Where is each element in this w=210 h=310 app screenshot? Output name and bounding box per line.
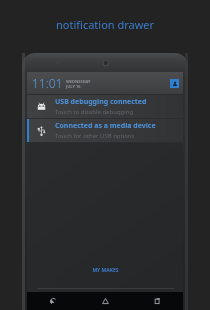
staticText: USB debugging connected	[55, 97, 147, 107]
staticText: Connected as a media device	[55, 121, 156, 131]
button[interactable]: Connected as a media device	[27, 119, 183, 142]
button[interactable]: USB debugging connected	[27, 95, 183, 118]
staticText: 11:01	[32, 75, 63, 91]
staticText: Touch for other USB options	[55, 132, 135, 140]
staticText: MY MAKES	[92, 267, 119, 274]
staticText: notification drawer	[56, 17, 155, 32]
staticText: WEDNESDAY	[66, 79, 91, 84]
button[interactable]: Recent apps	[131, 292, 183, 310]
button[interactable]: MY MAKES	[92, 267, 119, 274]
button[interactable]: Back	[27, 292, 79, 310]
staticText: Touch to disable debugging	[55, 108, 134, 116]
button[interactable]: Quick settings	[170, 79, 179, 88]
button[interactable]: Home	[79, 292, 131, 310]
staticText: JULY 16	[66, 84, 81, 89]
